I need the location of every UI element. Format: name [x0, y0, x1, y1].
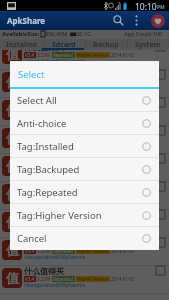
staticText: /storage/sdcard0/MyFavorite: [24, 86, 86, 92]
button[interactable]: 值: [0, 98, 169, 125]
staticText: V3.4: [25, 108, 35, 114]
button[interactable]: 值: [0, 154, 169, 181]
staticText: 值: [6, 214, 19, 230]
button[interactable]: 值: [0, 182, 169, 209]
button[interactable]: Sdcard: [43, 39, 85, 50]
staticText: 10:10: [135, 1, 157, 12]
staticText: 什么值得买: [24, 238, 64, 248]
staticText: Tag:Higher Version: [17, 209, 142, 222]
staticText: 856.45M: [45, 30, 68, 37]
staticText: Higher Version: [77, 108, 109, 114]
button[interactable]: 值: [0, 210, 169, 237]
staticText: Select: [18, 68, 45, 81]
staticText: /storage/sdcard0/MyFavorite: [24, 142, 86, 148]
staticText: 2014-01-07: [111, 276, 135, 282]
button[interactable]: More options: [126, 11, 146, 30]
staticText: AvailableSize:: [2, 30, 40, 37]
staticText: 什么值得买: [24, 98, 64, 108]
staticText: /storage/sdcard0/MyFavorite: [24, 226, 86, 232]
staticText: /storage/sdcard0/MyFavorite: [24, 198, 86, 204]
staticText: 什么值得买: [24, 70, 64, 80]
staticText: System: [135, 40, 161, 50]
button[interactable]: System: [127, 39, 169, 50]
staticText: Sdcard: [52, 40, 76, 50]
staticText: 值: [6, 74, 19, 90]
button[interactable]: 值: [0, 238, 169, 265]
staticText: Cancel: [17, 232, 142, 245]
button[interactable]: Tag:Higher Version: [10, 204, 159, 226]
staticText: 2014-01-07: [111, 108, 135, 114]
staticText: Tag:Installed: [17, 140, 142, 153]
staticText: 3.23M: [37, 52, 51, 58]
staticText: Repeated: [53, 52, 74, 58]
staticText: Repeated: [53, 108, 74, 114]
staticText: 值: [6, 130, 19, 146]
staticText: V3.4: [25, 52, 35, 58]
staticText: 值: [6, 270, 19, 286]
staticText: Higher Version: [77, 164, 109, 170]
staticText: /storage/sdcard0/MyFavorite: [24, 282, 86, 288]
staticText: 什么值得买: [24, 182, 64, 192]
staticText: Repeated: [53, 164, 74, 170]
button[interactable]: Tag:Installed: [10, 135, 159, 157]
staticText: 值: [6, 50, 19, 62]
staticText: 值: [6, 186, 19, 202]
button[interactable]: Cancel: [10, 227, 159, 249]
staticText: 2014-01-07: [111, 52, 135, 58]
button[interactable]: Installed: [0, 39, 43, 50]
staticText: 什么值得买: [24, 154, 64, 164]
staticText: 什么值得买: [24, 266, 64, 276]
staticText: ApkShare: [7, 15, 46, 26]
button[interactable]: Backup: [85, 39, 127, 50]
staticText: Installed: [6, 40, 37, 50]
staticText: Select All: [17, 94, 142, 107]
staticText: 什么值得买: [24, 126, 64, 136]
staticText: 2014-01-07: [111, 248, 135, 254]
staticText: Repeated: [53, 276, 74, 282]
button[interactable]: 值: [0, 266, 169, 293]
button[interactable]: 值: [0, 70, 169, 97]
staticText: 3.23M: [37, 276, 51, 282]
staticText: Anti-choice: [17, 117, 142, 130]
staticText: 26.1G: [76, 30, 91, 37]
staticText: 3.23M: [37, 192, 51, 198]
staticText: /storage/sdcard0/MyFavorite: [24, 58, 86, 64]
staticText: V3.4: [25, 220, 35, 226]
staticText: Higher Version: [77, 248, 109, 254]
button[interactable]: 值: [0, 126, 169, 153]
staticText: 3.23M: [37, 164, 51, 170]
button[interactable]: Tag:Repeated: [10, 181, 159, 203]
staticText: V3.4: [25, 164, 35, 170]
staticText: /storage/sdcard0/MyFavorite: [24, 170, 86, 176]
button[interactable]: Search: [108, 11, 128, 30]
staticText: Tag:Repeated: [17, 186, 142, 199]
staticText: /storage/sdcard0/MyFavorite: [24, 254, 86, 260]
staticText: 值: [6, 242, 19, 258]
button[interactable]: Tag:Backuped: [10, 158, 159, 180]
staticText: Repeated: [53, 248, 74, 254]
button[interactable]: 值: [0, 50, 169, 69]
button[interactable]: Favorites: [151, 14, 165, 28]
staticText: Higher Version: [77, 276, 109, 282]
staticText: 3.23M: [37, 220, 51, 226]
staticText: V3.4: [25, 248, 35, 254]
staticText: V3.4: [25, 192, 35, 198]
staticText: 3.23M: [37, 108, 51, 114]
button[interactable]: Anti-choice: [10, 112, 159, 134]
staticText: 3.23M: [37, 248, 51, 254]
button[interactable]: Select All: [10, 89, 159, 111]
staticText: 什么值得买: [24, 210, 64, 220]
staticText: App Count:106: [124, 30, 163, 37]
